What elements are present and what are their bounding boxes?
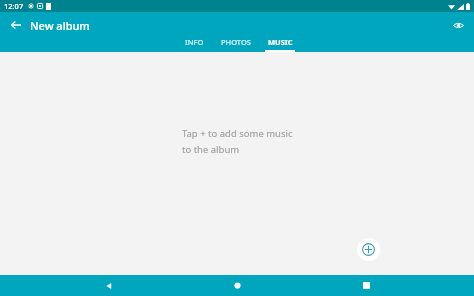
staticText: to the album	[182, 143, 240, 156]
staticText: MUSIC	[268, 37, 293, 47]
button[interactable]: MUSIC	[258, 37, 302, 52]
button[interactable]: Add music	[357, 238, 380, 261]
staticText: Tap + to add some music	[182, 127, 293, 140]
button[interactable]: Back	[6, 15, 26, 35]
staticText: 12:07	[4, 1, 24, 11]
button[interactable]: INFO	[174, 37, 214, 52]
staticText: INFO	[185, 37, 204, 47]
button[interactable]: Recent apps	[346, 275, 386, 296]
staticText: PHOTOS	[221, 37, 251, 47]
staticText: New album	[30, 18, 90, 33]
button[interactable]: Back	[89, 275, 129, 296]
button[interactable]: Visibility	[448, 15, 468, 35]
button[interactable]: PHOTOS	[214, 37, 258, 52]
button[interactable]: Home	[217, 275, 257, 296]
